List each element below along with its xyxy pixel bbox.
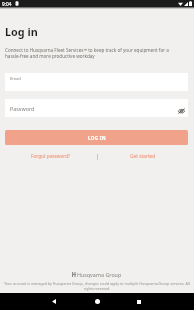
staticText: LOG IN xyxy=(88,135,106,141)
staticText: Forgot password? xyxy=(31,153,71,159)
staticText: Email xyxy=(10,76,21,82)
button[interactable]: Show password xyxy=(176,105,187,116)
button[interactable]: Forgot password? xyxy=(25,150,76,162)
button[interactable]: Home xyxy=(89,293,106,310)
staticText: Connect to Husqvarna Fleet Services™ to … xyxy=(5,47,183,59)
button[interactable]: Email xyxy=(5,73,188,91)
button[interactable]: Get started xyxy=(124,150,161,162)
button[interactable]: Back xyxy=(45,293,62,310)
button[interactable]: Password xyxy=(5,99,188,117)
staticText: 9:04 xyxy=(2,1,12,8)
button[interactable]: Recents xyxy=(130,293,147,310)
staticText: Your account is managed by Husqvarna Gro… xyxy=(1,281,193,291)
button[interactable]: LOG IN xyxy=(5,130,188,145)
staticText: Password xyxy=(10,105,35,112)
staticText: Log in xyxy=(5,24,38,39)
staticText: Husqvarna Group xyxy=(77,271,122,278)
staticText: Get started xyxy=(130,153,156,160)
